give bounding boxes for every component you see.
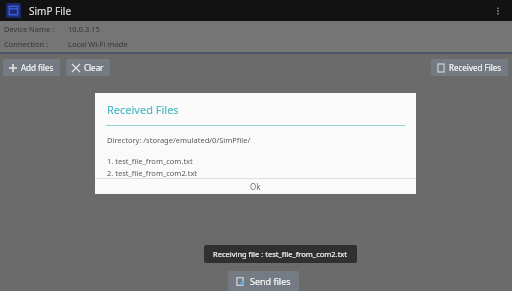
staticText: Add files (21, 62, 54, 73)
staticText: Clear (84, 62, 104, 73)
staticText: Receiving file : test_file_from_com2.txt (213, 249, 348, 259)
staticText: Ok (250, 181, 261, 192)
button[interactable]: Received Files (431, 59, 508, 76)
staticText: Received Files (449, 62, 502, 73)
staticText: Received Files (107, 102, 179, 117)
button[interactable]: Send files (228, 271, 299, 291)
staticText: 1. test_file_from_com.txt (107, 156, 193, 166)
staticText: 2. test_file_from_com2.txt (107, 168, 198, 178)
staticText: Device Name : (4, 24, 55, 34)
button[interactable]: Add files (3, 59, 60, 76)
button[interactable]: More options (489, 2, 507, 20)
staticText: Directory: /storage/emulated/0/SimPfile/ (107, 135, 251, 145)
staticText: Local Wi-Fi mode (68, 39, 128, 49)
staticText: SimP File (29, 4, 72, 18)
staticText: Send files (250, 275, 291, 287)
button[interactable]: Ok (95, 179, 416, 194)
staticText: 10.0.3.15 (68, 24, 100, 34)
button[interactable]: Clear (66, 59, 110, 76)
staticText: Connection : (4, 39, 49, 49)
